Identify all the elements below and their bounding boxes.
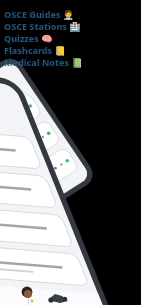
staticText: Quizzes 🧠 — [4, 32, 53, 44]
button[interactable]: OSCE Stations 🏥 — [4, 20, 81, 32]
button[interactable]: App preview screenshots — [0, 0, 141, 305]
button[interactable]: Medical Notes 📗 — [4, 56, 83, 68]
button[interactable]: Quizzes 🧠 — [4, 32, 53, 44]
staticText: Medical Notes 📗 — [4, 56, 83, 68]
button[interactable]: OSCE Guides 🧑‍⚕️ — [4, 8, 74, 20]
staticText: Flashcards 📒 — [4, 44, 66, 56]
button[interactable]: Flashcards 📒 — [4, 44, 66, 56]
staticText: OSCE Guides 🧑‍⚕️ — [4, 8, 74, 20]
staticText: OSCE Stations 🏥 — [4, 20, 81, 32]
